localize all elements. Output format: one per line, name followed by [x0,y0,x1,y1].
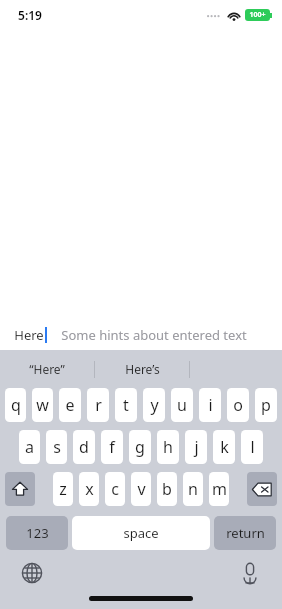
button[interactable]: b [157,472,177,506]
button[interactable]: h [157,430,179,464]
staticText: Here’s [125,361,160,377]
button[interactable]: y [143,388,165,422]
button[interactable]: d [73,430,95,464]
button[interactable]: t [115,388,137,422]
button[interactable]: “Here” [0,350,94,388]
staticText: d [79,436,89,458]
staticText: return [226,524,265,542]
staticText: m [212,478,227,500]
staticText: x [85,478,94,500]
button[interactable]: f [101,430,123,464]
button[interactable]: i [199,388,221,422]
button[interactable]: 123 [6,516,68,550]
staticText: l [250,436,255,458]
button[interactable]: s [46,430,67,464]
button[interactable]: c [105,472,125,506]
button[interactable]: z [53,472,73,506]
button[interactable]: Here’s [95,350,189,388]
button[interactable]: n [183,472,203,506]
button[interactable]: Backspace [247,472,277,506]
button[interactable]: Shift [5,472,35,506]
button[interactable]: l [241,430,263,464]
button[interactable]: a [19,430,40,464]
staticText: b [162,478,172,500]
button[interactable]: r [87,388,109,422]
button[interactable]: m [209,472,229,506]
staticText: 5:19 [18,7,42,23]
button[interactable]: w [32,388,53,422]
staticText: z [59,478,67,500]
staticText: o [233,394,243,416]
button[interactable]: v [131,472,151,506]
button[interactable]: p [255,388,277,422]
button[interactable]: u [171,388,193,422]
staticText: w [36,394,49,416]
staticText: u [177,394,187,416]
staticText: Some hints about entered text [61,326,247,344]
button[interactable]: return [214,516,276,550]
staticText: space [123,524,159,542]
button[interactable]: space [72,516,210,550]
staticText: s [53,436,61,458]
staticText: v [137,478,146,500]
staticText: y [150,394,159,416]
staticText: Here [14,326,44,344]
button[interactable]: o [227,388,249,422]
button[interactable]: g [129,430,151,464]
button[interactable]: k [213,430,235,464]
staticText: j [194,436,199,458]
staticText: q [11,394,21,416]
staticText: 123 [26,524,49,542]
staticText: r [95,394,102,416]
staticText: p [261,394,271,416]
staticText: k [220,436,229,458]
staticText: t [123,394,129,416]
staticText: i [208,394,213,416]
staticText: a [25,436,34,458]
staticText: 100+ [249,10,266,20]
button[interactable]: q [5,388,26,422]
staticText: n [188,478,198,500]
button[interactable]: j [185,430,207,464]
staticText: f [109,436,115,458]
staticText: c [111,478,119,500]
button[interactable]: Dictation [234,557,266,589]
staticText: “Here” [29,361,65,377]
staticText: e [65,394,75,416]
button[interactable]: x [79,472,99,506]
button[interactable]: Here [0,320,282,350]
button[interactable]: e [59,388,81,422]
button[interactable]: Change keyboard [16,557,48,589]
staticText: h [163,436,173,458]
staticText: g [135,436,145,458]
